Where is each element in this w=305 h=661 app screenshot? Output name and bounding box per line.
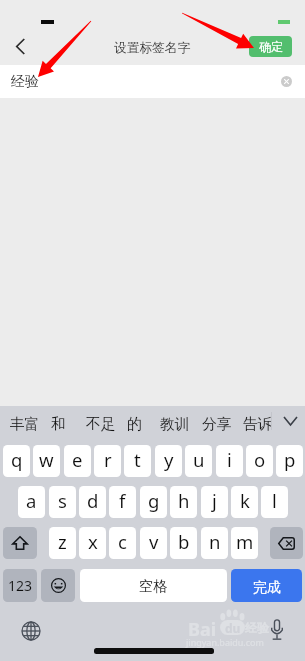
button[interactable]: 告诉 <box>243 412 273 436</box>
staticText: 的 <box>127 415 142 434</box>
staticText: g <box>148 488 160 513</box>
staticText: c <box>118 529 127 554</box>
staticText: 经验 <box>245 620 269 635</box>
staticText: e <box>72 447 83 472</box>
button[interactable]: z <box>49 527 76 559</box>
button[interactable]: o <box>246 445 273 477</box>
staticText: m <box>236 529 254 554</box>
staticText: du <box>225 620 241 635</box>
button[interactable]: 不足 <box>86 412 116 436</box>
staticText: 教训 <box>160 415 190 434</box>
button[interactable]: 确定 <box>249 36 292 57</box>
staticText: 确定 <box>259 39 283 54</box>
button[interactable]: 的 <box>127 412 142 436</box>
button[interactable]: r <box>94 445 121 477</box>
staticText: u <box>193 447 205 472</box>
staticText: w <box>39 447 54 472</box>
staticText: s <box>58 488 67 513</box>
button[interactable]: 经验 <box>0 65 305 98</box>
staticText: 设置标签名字 <box>114 40 191 56</box>
staticText: l <box>272 488 277 513</box>
staticText: Bai <box>188 617 217 642</box>
button[interactable]: 教训 <box>160 412 190 436</box>
button[interactable]: Delete <box>270 527 303 559</box>
staticText: d <box>87 488 99 513</box>
button[interactable]: g <box>140 486 167 518</box>
button[interactable]: 分享 <box>202 412 232 436</box>
button[interactable]: p <box>276 445 303 477</box>
button[interactable]: w <box>33 445 60 477</box>
button[interactable]: i <box>216 445 243 477</box>
staticText: t <box>134 447 141 472</box>
button[interactable]: f <box>109 486 136 518</box>
button[interactable]: l <box>261 486 288 518</box>
staticText: 和 <box>51 415 66 434</box>
staticText: 123 <box>8 576 33 595</box>
staticText: 分享 <box>202 415 232 434</box>
button[interactable]: 完成 <box>231 569 302 602</box>
staticText: x <box>88 529 98 554</box>
button[interactable]: m <box>231 527 258 559</box>
button[interactable]: Clear text <box>281 76 292 87</box>
button[interactable]: More candidates <box>276 406 305 436</box>
button[interactable]: t <box>124 445 151 477</box>
staticText: 丰富 <box>10 415 40 434</box>
button[interactable]: c <box>109 527 136 559</box>
staticText: j <box>212 488 217 513</box>
button[interactable]: h <box>170 486 197 518</box>
button[interactable]: 丰富 <box>10 412 40 436</box>
button[interactable]: e <box>64 445 91 477</box>
staticText: jingyan.baidu.com <box>186 636 264 648</box>
staticText: 空格 <box>139 577 168 595</box>
button[interactable]: q <box>3 445 30 477</box>
button[interactable]: s <box>49 486 76 518</box>
staticText: 完成 <box>253 579 281 597</box>
staticText: 告诉 <box>243 415 273 434</box>
button[interactable]: Switch language <box>17 617 44 644</box>
button[interactable]: b <box>170 527 197 559</box>
button[interactable]: x <box>79 527 106 559</box>
button[interactable]: Shift <box>3 527 37 559</box>
button[interactable]: k <box>231 486 258 518</box>
staticText: i <box>227 447 232 472</box>
staticText: h <box>178 488 190 513</box>
staticText: o <box>254 447 266 472</box>
staticText: b <box>178 529 190 554</box>
button[interactable]: d <box>79 486 106 518</box>
staticText: k <box>240 488 250 513</box>
staticText: f <box>119 488 126 513</box>
button[interactable]: 123 <box>3 569 37 602</box>
staticText: 不足 <box>86 415 116 434</box>
button[interactable]: Emoji <box>41 569 75 602</box>
staticText: z <box>58 529 67 554</box>
button[interactable]: u <box>185 445 212 477</box>
staticText: 经验 <box>11 73 39 91</box>
button[interactable]: j <box>201 486 228 518</box>
button[interactable]: y <box>155 445 182 477</box>
staticText: q <box>11 447 23 472</box>
staticText: p <box>284 447 296 472</box>
staticText: y <box>164 447 174 472</box>
staticText: n <box>209 529 221 554</box>
button[interactable]: v <box>140 527 167 559</box>
staticText: v <box>149 529 159 554</box>
staticText: r <box>104 447 112 472</box>
staticText: a <box>26 488 37 513</box>
button[interactable]: n <box>201 527 228 559</box>
button[interactable]: Back <box>3 30 37 63</box>
button[interactable]: 空格 <box>80 569 227 602</box>
button[interactable]: a <box>18 486 45 518</box>
button[interactable]: Voice input <box>263 616 290 643</box>
button[interactable]: 和 <box>51 412 66 436</box>
